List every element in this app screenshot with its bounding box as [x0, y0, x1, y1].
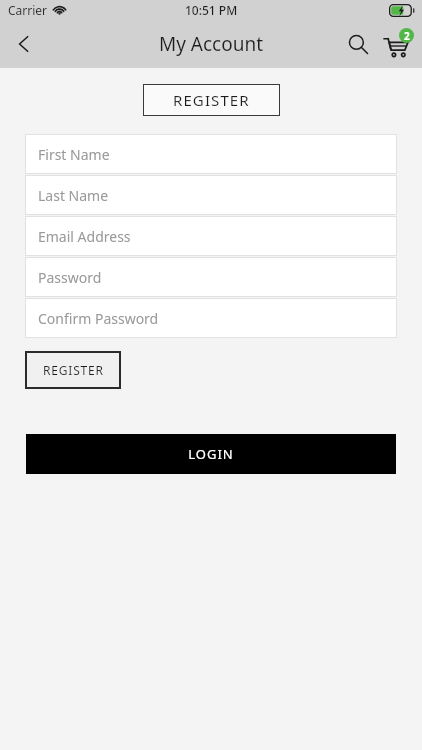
button[interactable]: Confirm Password [25, 298, 397, 338]
button[interactable]: REGISTER [25, 351, 121, 389]
staticText: 10:51 PM [185, 2, 238, 18]
staticText: Password [38, 268, 102, 287]
staticText: Last Name [38, 186, 109, 205]
staticText: REGISTER [173, 90, 250, 110]
staticText: Confirm Password [38, 309, 159, 328]
staticText: REGISTER [43, 362, 104, 378]
staticText: Carrier [8, 2, 48, 18]
staticText: 2 [404, 29, 410, 43]
button[interactable]: REGISTER [143, 84, 280, 116]
button[interactable]: LOGIN [26, 434, 396, 474]
button[interactable]: Email Address [25, 216, 397, 256]
button[interactable]: Cart, 2 items [378, 24, 418, 64]
button[interactable]: Password [25, 257, 397, 297]
button[interactable]: First Name [25, 134, 397, 174]
button[interactable]: Search [338, 24, 378, 64]
button[interactable]: Back [0, 20, 48, 68]
button[interactable]: Last Name [25, 175, 397, 215]
staticText: First Name [38, 145, 110, 164]
staticText: My Account [159, 31, 264, 57]
staticText: Email Address [38, 227, 131, 246]
staticText: LOGIN [188, 445, 234, 463]
